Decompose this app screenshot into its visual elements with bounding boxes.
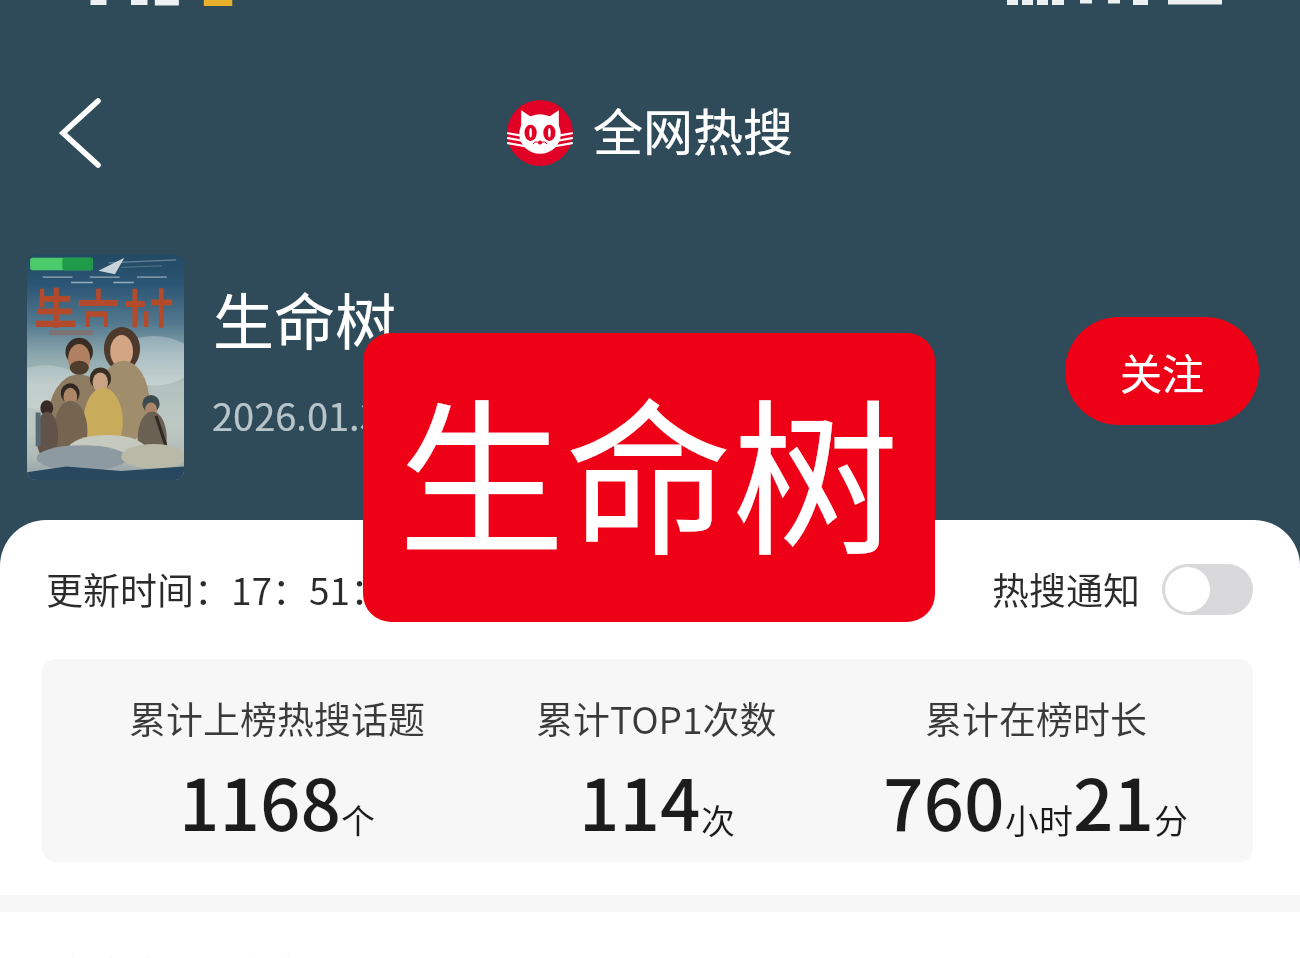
button[interactable]: 生命树 海报 (27, 255, 184, 480)
staticText: 小时 (1005, 795, 1073, 844)
staticText: 760 (883, 749, 1005, 852)
button[interactable]: Back (44, 90, 116, 176)
button[interactable]: 热搜通知 (992, 562, 1253, 616)
staticText: 关注 (1120, 341, 1205, 402)
button[interactable]: 生命树 (363, 333, 935, 622)
staticText: 累计在榜时长 (925, 691, 1147, 745)
staticText: 热搜通知 (992, 562, 1140, 616)
staticText: 个 (341, 795, 375, 844)
staticText: 全网热搜 (593, 93, 793, 165)
staticText: 更新时间：17：51：30 (46, 562, 429, 616)
staticText: 累计TOP1次数 (536, 691, 777, 745)
staticText: 21 (1073, 749, 1154, 852)
staticText: 次 (701, 795, 735, 844)
button[interactable]: 关注 (1065, 317, 1259, 425)
staticText: 生命树 (398, 347, 900, 589)
button[interactable]: 全网热搜 (507, 93, 793, 165)
staticText: 2026.01.30 (212, 387, 402, 442)
staticText: 114 (579, 749, 701, 852)
staticText: 1168 (179, 749, 341, 852)
staticText: 累计上榜热搜话题 (129, 691, 425, 745)
staticText: 生命树 (213, 274, 397, 362)
staticText: 分 (1154, 795, 1188, 844)
